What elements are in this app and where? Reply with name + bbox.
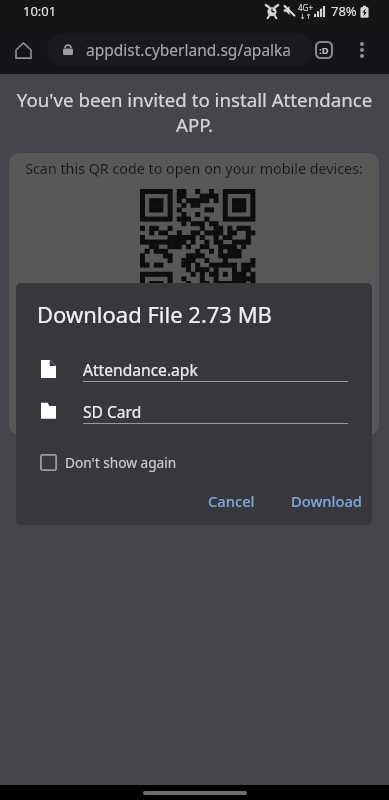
staticText: Download File 2.73 MB [37, 299, 272, 329]
staticText: You've been invited to install Attendanc… [14, 87, 375, 137]
button[interactable]: Download [281, 484, 372, 518]
staticText: Cancel [208, 491, 255, 511]
staticText: Download [291, 491, 362, 511]
staticText: 10:01 [23, 2, 57, 20]
staticText: SD Card [83, 401, 142, 422]
staticText: ↓↑ [300, 13, 312, 21]
staticText: appdist.cyberland.sg/apalka [86, 39, 292, 60]
other: Home gesture bar [143, 791, 247, 795]
staticText: 78% [331, 2, 357, 20]
staticText: :D [319, 44, 329, 57]
button[interactable]: Home [3, 30, 43, 70]
button[interactable]: appdist.cyberland.sg/apalka [47, 33, 313, 66]
button[interactable]: Tabs [307, 33, 341, 67]
staticText: Don't show again [65, 453, 177, 472]
button[interactable]: More options [345, 33, 379, 67]
staticText: Scan this QR code to open on your mobile… [9, 159, 379, 178]
staticText: 4G+ [298, 2, 313, 13]
button[interactable]: Don't show again [16, 449, 201, 476]
staticText: Attendance.apk [83, 359, 198, 380]
button[interactable]: Cancel [198, 484, 265, 518]
